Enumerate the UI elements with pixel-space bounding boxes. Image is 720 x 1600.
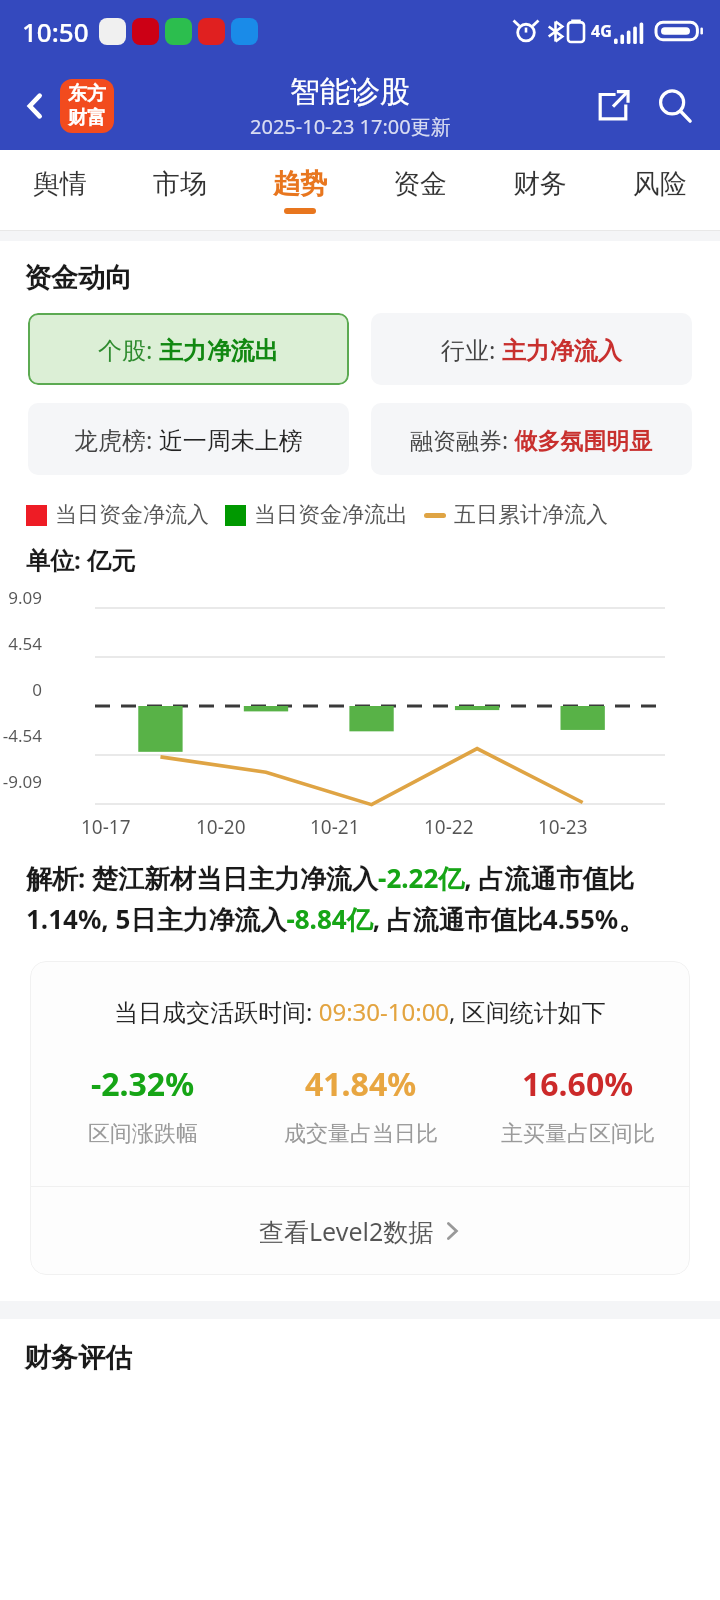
staticText: 查看Level2数据 xyxy=(259,1214,434,1248)
staticText: 10-17 xyxy=(81,814,131,840)
button[interactable]: 分享 xyxy=(586,79,640,133)
staticText: 五日累计净流入 xyxy=(454,501,608,529)
staticText: 当日资金净流出 xyxy=(254,501,408,529)
button[interactable]: 风险 xyxy=(600,150,720,230)
button[interactable]: 查看Level2数据 xyxy=(30,1187,690,1275)
button[interactable]: 行业: 主力净流入 xyxy=(371,313,692,385)
staticText: 4.54 xyxy=(2,632,42,655)
staticText: 市场 xyxy=(153,167,207,201)
staticText: -4.54 xyxy=(2,724,42,747)
button[interactable]: 财务 xyxy=(480,150,600,230)
staticText: 财富 xyxy=(68,106,106,130)
staticText: 财务 xyxy=(513,167,567,201)
staticText: 41.84% xyxy=(305,1062,417,1106)
staticText: 9.09 xyxy=(2,586,42,609)
staticText: 资金 xyxy=(393,167,447,201)
staticText: 智能诊股 xyxy=(290,73,410,111)
staticText: 2025-10-23 17:00更新 xyxy=(250,113,451,140)
button[interactable]: 搜索 xyxy=(648,79,702,133)
staticText: 东方 xyxy=(68,82,106,106)
staticText: 10-22 xyxy=(424,814,474,840)
staticText: 风险 xyxy=(633,167,687,201)
staticText: -2.32% xyxy=(91,1062,195,1106)
staticText: 财务评估 xyxy=(24,1341,132,1375)
staticText: 10-20 xyxy=(196,814,246,840)
staticText: 融资融券: 做多氛围明显 xyxy=(410,424,653,455)
staticText: 10:50 xyxy=(22,14,89,49)
staticText: 主买量占区间比 xyxy=(501,1120,655,1148)
staticText: 个股: 主力净流出 xyxy=(98,333,279,366)
staticText: 0 xyxy=(2,678,42,701)
button[interactable]: 趋势 xyxy=(240,150,360,230)
button[interactable]: 舆情 xyxy=(0,150,120,230)
staticText: -9.09 xyxy=(2,770,42,793)
button[interactable]: 返回 xyxy=(10,81,60,131)
button[interactable]: 市场 xyxy=(120,150,240,230)
staticText: 趋势 xyxy=(273,167,327,201)
staticText: 10-21 xyxy=(310,814,360,840)
staticText: 区间涨跌幅 xyxy=(88,1120,198,1148)
staticText: 资金动向 xyxy=(24,261,132,295)
button[interactable]: 东方财富 xyxy=(60,79,114,133)
button[interactable]: 龙虎榜: 近一周未上榜 xyxy=(28,403,349,475)
staticText: 16.60% xyxy=(522,1062,634,1106)
staticText: 龙虎榜: 近一周未上榜 xyxy=(74,423,303,456)
staticText: 解析: 楚江新材当日主力净流入-2.22亿, 占流通市值比1.14%, 5日主力… xyxy=(26,860,694,937)
button[interactable]: 资金 xyxy=(360,150,480,230)
staticText: 当日成交活跃时间: 09:30-10:00, 区间统计如下 xyxy=(114,995,606,1028)
staticText: 4G xyxy=(591,20,612,42)
staticText: 单位: 亿元 xyxy=(26,543,135,576)
staticText: 舆情 xyxy=(33,167,87,201)
staticText: 成交量占当日比 xyxy=(284,1120,438,1148)
staticText: 10-23 xyxy=(538,814,588,840)
button[interactable]: 融资融券: 做多氛围明显 xyxy=(371,403,692,475)
staticText: 行业: 主力净流入 xyxy=(441,333,622,366)
staticText: 当日资金净流入 xyxy=(55,501,209,529)
button[interactable]: 个股: 主力净流出 xyxy=(28,313,349,385)
